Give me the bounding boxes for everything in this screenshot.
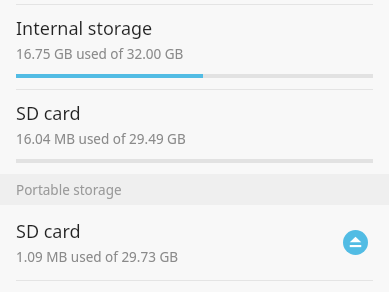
staticText: Portable storage [16, 181, 122, 199]
staticText: SD card [16, 101, 81, 126]
button[interactable]: Eject SD card [343, 230, 368, 255]
button[interactable]: SD card [0, 205, 389, 280]
staticText: 16.04 MB used of 29.49 GB [16, 130, 186, 148]
button[interactable]: SD card [0, 90, 389, 174]
staticText: Internal storage [16, 16, 153, 41]
staticText: 16.75 GB used of 32.00 GB [16, 45, 184, 63]
staticText: SD card [16, 219, 81, 244]
button[interactable]: Internal storage [0, 5, 389, 89]
staticText: 1.09 MB used of 29.73 GB [16, 248, 178, 266]
